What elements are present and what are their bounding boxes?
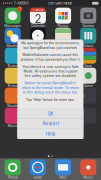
staticText: MobileSubstrate cannot cause this [22,53,78,57]
staticText: Music [83,175,93,179]
staticText: Your device is now running in Safe [22,65,78,69]
staticText: Store [84,64,92,68]
staticText: Mode. All extensions that support [23,69,77,73]
button[interactable]: Game [76,68,101,87]
staticText: Reboot (or restart SpringBoard) to [24,81,76,85]
staticText: ••••• T-Mobile [2,1,28,5]
button[interactable]: Music [76,159,101,179]
staticText: 2 [34,12,41,24]
button[interactable]: Camera [76,8,101,27]
staticText: problem; it has prevented you from it. [20,57,80,61]
button[interactable] [50,88,76,107]
staticText: Restart [42,121,58,126]
staticText: Calendar [31,24,45,28]
button[interactable] [50,108,76,127]
button[interactable]: OK [17,109,83,118]
staticText: Weather [6,44,19,48]
button[interactable] [76,88,101,107]
staticText: Mail [60,175,67,179]
staticText: OK [47,111,53,117]
staticText: this safety system are disabled. [24,74,76,78]
button[interactable] [25,108,50,127]
button[interactable] [50,68,76,87]
staticText: Music [8,124,18,128]
staticText: Game [84,84,93,88]
staticText: Help [45,131,55,137]
button[interactable]: Clock [25,28,50,47]
button[interactable] [50,48,76,67]
staticText: 1 [19,7,20,11]
staticText: Videos [83,44,94,48]
staticText: Reader [7,104,18,108]
button[interactable]: Photos [50,8,76,27]
staticText: Notes [8,84,18,88]
button[interactable]: Maps [50,28,76,47]
staticText: Thursday [33,8,43,11]
staticText: but SpringBoard has just crashed. [23,46,77,50]
staticText: We apologize for the inconvenience, [21,41,80,45]
staticText: Camera [82,24,94,28]
button[interactable]: Videos [76,28,101,47]
button[interactable]: Safari [25,159,50,179]
staticText: Tap 'Help' below for more tips. [26,98,75,102]
button[interactable] [76,108,101,127]
staticText: Maps [59,44,68,48]
button[interactable]: 1 [0,8,25,27]
staticText: Safari [33,175,42,179]
staticText: Notes [8,64,18,68]
staticText: Exit Safe Mode [48,1,72,5]
staticText: Phone [8,175,18,179]
staticText: return to the normal mode. To return [22,86,79,90]
staticText: to this dialog touch the status bar. [23,90,78,94]
button[interactable]: Music [0,108,25,127]
button[interactable]: Help [17,129,83,139]
button[interactable]: Phone [0,159,25,179]
staticText: Messages [4,24,21,28]
staticText: Clock [33,44,42,48]
button[interactable]: Notes [0,68,25,87]
button[interactable]: Mail [50,159,76,179]
button[interactable]: Restart [17,119,83,128]
staticText: Photos [58,24,69,28]
button[interactable] [25,48,50,67]
button[interactable]: Reader [0,88,25,107]
button[interactable]: Notes [0,48,25,67]
button[interactable] [25,68,50,87]
button[interactable]: Store [76,48,101,67]
button[interactable] [25,88,50,107]
button[interactable]: Thursday [25,8,50,27]
button[interactable]: Weather [0,28,25,47]
